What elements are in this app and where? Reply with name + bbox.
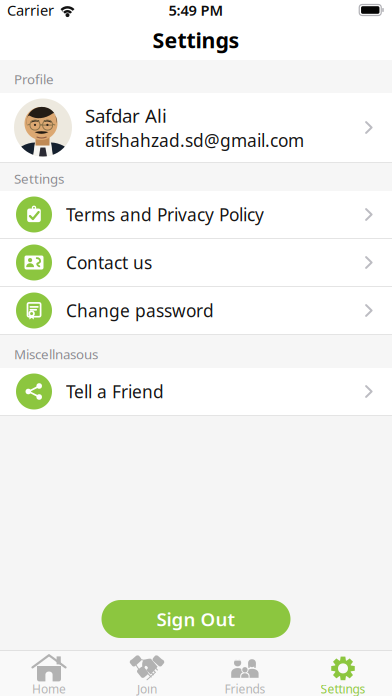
staticText: Sign Out: [156, 607, 235, 631]
staticText: atifshahzad.sd@gmail.com: [85, 129, 304, 152]
button[interactable]: Settings: [294, 651, 392, 696]
staticText: Friends: [224, 681, 265, 696]
staticText: Carrier: [7, 0, 54, 20]
button[interactable]: Safdar Ali: [0, 93, 392, 162]
staticText: Safdar Ali: [85, 103, 167, 128]
button[interactable]: Tell a Friend: [0, 368, 392, 416]
button[interactable]: Change password: [0, 287, 392, 335]
staticText: Settings: [14, 170, 64, 187]
staticText: Tell a Friend: [66, 380, 164, 403]
staticText: 5:49 PM: [168, 0, 223, 20]
button[interactable]: Join: [98, 651, 196, 696]
staticText: Contact us: [66, 251, 152, 274]
staticText: Settings: [320, 681, 365, 696]
button[interactable]: Contact us: [0, 239, 392, 287]
button[interactable]: Home: [0, 651, 98, 696]
staticText: Settings: [152, 26, 239, 54]
button[interactable]: Sign Out: [101, 600, 290, 638]
staticText: Join: [137, 681, 157, 696]
staticText: Profile: [14, 70, 54, 88]
staticText: Home: [32, 681, 66, 696]
staticText: Miscellnasous: [14, 345, 98, 363]
button[interactable]: Terms and Privacy Policy: [0, 191, 392, 239]
button[interactable]: Friends: [196, 651, 294, 696]
staticText: Change password: [66, 299, 214, 322]
staticText: Terms and Privacy Policy: [66, 203, 264, 226]
